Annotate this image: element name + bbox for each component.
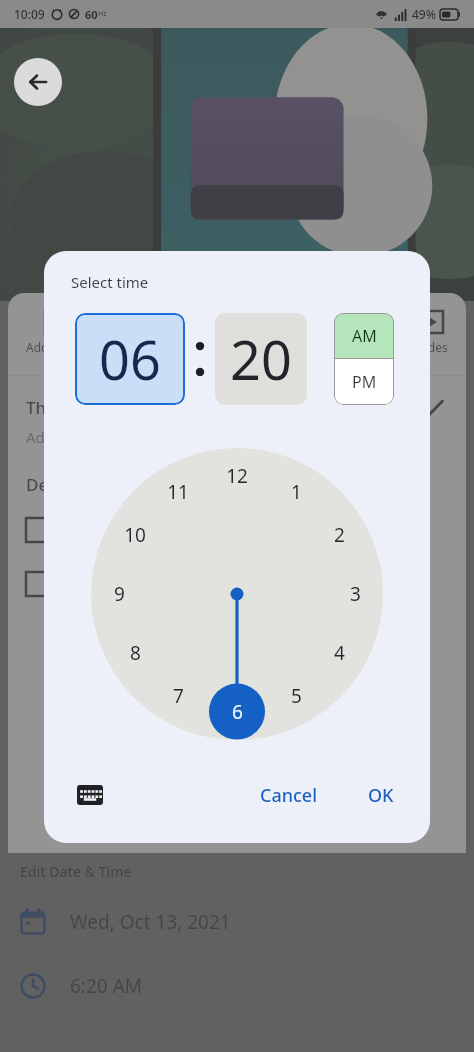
staticText: 06 — [99, 322, 161, 396]
staticText: 8 — [130, 640, 141, 666]
staticText: 49% — [412, 6, 436, 22]
staticText: 5 — [291, 683, 302, 709]
button[interactable]: Back — [14, 58, 62, 106]
staticText: 3 — [350, 581, 361, 607]
staticText: 10 — [124, 522, 146, 548]
staticText: 10:09 — [14, 6, 45, 22]
staticText: 4 — [334, 640, 345, 666]
staticText: 9 — [114, 581, 125, 607]
staticText: 11 — [167, 479, 189, 505]
staticText: OK — [368, 783, 394, 808]
button[interactable]: Slides — [411, 307, 452, 359]
staticText: Select time — [71, 272, 149, 292]
staticText: Add photo — [26, 339, 86, 355]
button[interactable]: 06 — [75, 313, 185, 405]
button[interactable]: PM — [334, 359, 394, 405]
staticText: Slides — [415, 339, 448, 355]
staticText: The Octo — [26, 396, 99, 419]
staticText: 12 — [226, 463, 248, 489]
staticText: Add a description — [26, 427, 150, 447]
staticText: Hz — [98, 9, 107, 19]
staticText: 20 — [230, 322, 292, 396]
staticText: 2 — [334, 522, 345, 548]
staticText: 60 — [85, 7, 98, 22]
staticText: Edit Date & Time — [20, 862, 132, 881]
staticText: PM — [352, 371, 377, 393]
button[interactable]: Switch to text input — [68, 773, 112, 817]
button[interactable]: Cancel — [248, 775, 330, 816]
button[interactable]: OK — [356, 775, 406, 816]
staticText: 6 — [232, 699, 243, 725]
staticText: 7 — [173, 683, 184, 709]
button[interactable]: AM — [334, 313, 394, 358]
staticText: Details — [26, 473, 82, 496]
button[interactable]: 20 — [215, 313, 307, 405]
staticText: 6:20 AM — [70, 973, 143, 999]
staticText: 1 — [291, 479, 302, 505]
staticText: Wed, Oct 13, 2021 — [70, 909, 231, 935]
staticText: AM — [352, 325, 377, 347]
button[interactable]: Add photo — [22, 307, 90, 359]
staticText: Cancel — [260, 783, 318, 808]
